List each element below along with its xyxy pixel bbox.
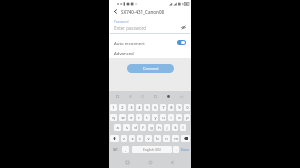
- staticText: m: [174, 136, 178, 141]
- button[interactable]: u: [160, 114, 166, 121]
- button[interactable]: e: [128, 114, 134, 121]
- staticText: n: [165, 136, 168, 141]
- button[interactable]: Sticker: [114, 93, 121, 100]
- button[interactable]: Search: [165, 93, 172, 100]
- button[interactable]: GIF: [127, 93, 134, 100]
- button[interactable]: r: [136, 114, 142, 121]
- button[interactable]: g: [148, 124, 154, 131]
- button[interactable]: y: [152, 114, 158, 121]
- button[interactable]: Clipboard: [152, 93, 159, 100]
- button[interactable]: j: [164, 124, 170, 131]
- button[interactable]: Comma: [122, 146, 129, 153]
- staticText: 6: [154, 105, 157, 110]
- button[interactable]: Done: [181, 146, 190, 153]
- button[interactable]: d: [132, 124, 138, 131]
- button[interactable]: c: [137, 135, 143, 142]
- staticText: r: [138, 115, 140, 120]
- staticText: w: [121, 115, 125, 120]
- button[interactable]: 0: [184, 104, 190, 111]
- button[interactable]: v: [145, 135, 152, 142]
- button[interactable]: h: [156, 124, 162, 131]
- button[interactable]: Show password: [180, 24, 187, 31]
- staticText: a: [116, 125, 119, 130]
- button[interactable]: Backspace: [181, 135, 190, 142]
- button[interactable]: z: [121, 135, 127, 142]
- staticText: d: [134, 125, 137, 130]
- button[interactable]: 8: [168, 104, 174, 111]
- staticText: x: [131, 136, 134, 141]
- staticText: i: [170, 115, 172, 120]
- button[interactable]: Auto reconnect: [109, 37, 191, 48]
- button[interactable]: k: [172, 124, 178, 131]
- staticText: k: [174, 125, 177, 130]
- staticText: o: [178, 115, 181, 120]
- staticText: ,: [125, 147, 126, 152]
- staticText: 3: [130, 105, 133, 110]
- button[interactable]: s: [123, 124, 130, 131]
- button[interactable]: Connect: [127, 64, 174, 73]
- button[interactable]: Enter: [178, 93, 185, 100]
- staticText: Password: [114, 20, 129, 24]
- staticText: 2: [121, 105, 124, 110]
- button[interactable]: Advanced: [109, 47, 191, 58]
- button[interactable]: 5: [144, 104, 150, 111]
- button[interactable]: Shift: [110, 135, 119, 142]
- button[interactable]: 6: [152, 104, 158, 111]
- staticText: z: [123, 136, 125, 141]
- staticText: Advanced: [114, 50, 134, 56]
- staticText: Connect: [143, 66, 159, 71]
- button[interactable]: !#1: [111, 146, 119, 153]
- staticText: p: [186, 115, 189, 120]
- staticText: .: [176, 147, 177, 152]
- staticText: v: [147, 136, 150, 141]
- button[interactable]: x: [129, 135, 135, 142]
- button[interactable]: l: [180, 124, 186, 131]
- button[interactable]: q: [110, 114, 117, 121]
- button[interactable]: p: [184, 114, 190, 121]
- staticText: 0: [186, 105, 189, 110]
- button[interactable]: b: [154, 135, 161, 142]
- button[interactable]: Back: [112, 8, 119, 15]
- staticText: Enter password: [114, 25, 147, 31]
- staticText: j: [166, 125, 168, 130]
- button[interactable]: i: [168, 114, 174, 121]
- button[interactable]: 9: [176, 104, 182, 111]
- staticText: t: [146, 115, 148, 120]
- button[interactable]: n: [163, 135, 170, 142]
- button[interactable]: 4: [136, 104, 142, 111]
- staticText: g: [150, 125, 153, 130]
- staticText: 5: [146, 105, 149, 110]
- staticText: 7: [162, 105, 165, 110]
- button[interactable]: 3: [128, 104, 134, 111]
- button[interactable]: m: [172, 135, 179, 142]
- staticText: 1: [112, 105, 115, 110]
- staticText: l: [182, 125, 184, 130]
- button[interactable]: English (US): [132, 146, 172, 153]
- button[interactable]: 1: [110, 104, 117, 111]
- staticText: h: [158, 125, 161, 130]
- staticText: 4: [138, 105, 141, 110]
- button[interactable]: t: [144, 114, 150, 121]
- staticText: u: [162, 115, 165, 120]
- button[interactable]: Recents: [123, 158, 132, 167]
- staticText: e: [130, 115, 133, 120]
- staticText: q: [112, 115, 115, 120]
- staticText: b: [156, 136, 159, 141]
- staticText: Auto reconnect: [114, 40, 145, 46]
- button[interactable]: Home: [146, 158, 155, 167]
- button[interactable]: f: [140, 124, 146, 131]
- button[interactable]: Settings: [139, 93, 146, 100]
- button[interactable]: a: [114, 124, 121, 131]
- button[interactable]: o: [176, 114, 182, 121]
- staticText: SX740-431_Canon08: [121, 9, 165, 15]
- button[interactable]: 7: [160, 104, 166, 111]
- button[interactable]: 2: [119, 104, 126, 111]
- staticText: English (US): [143, 148, 161, 152]
- button[interactable]: Back: [168, 158, 177, 167]
- staticText: Done: [181, 148, 190, 152]
- button[interactable]: Period: [173, 146, 179, 153]
- staticText: 9: [178, 105, 181, 110]
- staticText: y: [154, 115, 157, 120]
- button[interactable]: w: [119, 114, 126, 121]
- staticText: 8: [170, 105, 173, 110]
